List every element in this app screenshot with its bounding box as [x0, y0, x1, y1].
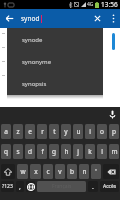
button[interactable]: Voice input	[105, 107, 120, 121]
button[interactable]: Symbols	[1, 181, 14, 192]
staticText: g	[52, 147, 56, 156]
staticText: a	[4, 127, 8, 136]
staticText: synode	[22, 36, 43, 44]
button[interactable]: u	[73, 124, 83, 139]
staticText: h	[64, 147, 69, 156]
button[interactable]: Comma	[16, 181, 24, 192]
staticText: k	[88, 147, 92, 156]
staticText: j	[77, 147, 79, 156]
button[interactable]: w	[17, 164, 28, 179]
button[interactable]: Clear search	[89, 9, 106, 28]
button[interactable]: x	[30, 164, 41, 179]
button[interactable]: z	[13, 124, 23, 139]
staticText: i	[89, 127, 91, 136]
button[interactable]: More options	[106, 9, 120, 28]
staticText: synonyme	[22, 58, 52, 66]
button[interactable]: Shift	[1, 164, 15, 179]
staticText: x	[34, 167, 38, 176]
staticText: q	[4, 147, 8, 156]
staticText: r	[41, 127, 44, 136]
button[interactable]: i	[85, 124, 95, 139]
staticText: w	[20, 167, 26, 176]
button[interactable]: Back	[0, 9, 19, 28]
staticText: b	[70, 167, 74, 176]
staticText: z	[16, 127, 20, 136]
staticText: 4G	[87, 1, 94, 8]
staticText: synod	[21, 14, 40, 23]
button[interactable]: c	[43, 164, 53, 179]
staticText: s	[16, 147, 20, 156]
button[interactable]: Backspace	[103, 164, 119, 179]
button[interactable]: o	[97, 124, 107, 139]
staticText: d	[28, 147, 32, 156]
button[interactable]: l	[97, 144, 107, 159]
staticText: ?123	[2, 183, 13, 190]
staticText: l	[101, 147, 103, 156]
staticText: ,	[19, 182, 21, 192]
button[interactable]: h	[61, 144, 71, 159]
staticText: c	[46, 167, 50, 176]
staticText: t	[53, 127, 56, 136]
button[interactable]: q	[1, 144, 11, 159]
button[interactable]: b	[67, 164, 77, 179]
button[interactable]: Period	[88, 181, 98, 192]
staticText: o	[100, 127, 104, 136]
button[interactable]: synonyme	[7, 50, 103, 72]
button[interactable]: m	[109, 144, 119, 159]
staticText: y	[64, 127, 68, 136]
staticText: m	[111, 147, 118, 156]
button[interactable]: k	[85, 144, 95, 159]
staticText: .	[92, 182, 94, 192]
button[interactable]: Enter	[100, 181, 119, 192]
button[interactable]: d	[25, 144, 35, 159]
staticText: e	[28, 127, 32, 136]
button[interactable]: Change language	[26, 181, 35, 192]
staticText: Accès	[103, 183, 117, 190]
staticText: '	[95, 167, 97, 176]
button[interactable]: s	[13, 144, 23, 159]
button[interactable]: f	[37, 144, 47, 159]
button[interactable]: r	[37, 124, 47, 139]
button[interactable]: t	[49, 124, 59, 139]
button[interactable]: synode	[7, 28, 103, 50]
button[interactable]: e	[25, 124, 35, 139]
staticText: f	[41, 147, 44, 156]
button[interactable]: g	[49, 144, 59, 159]
button[interactable]: synopsis	[7, 72, 103, 94]
button[interactable]: p	[109, 124, 119, 139]
staticText: v	[58, 167, 62, 176]
button[interactable]: v	[55, 164, 65, 179]
button[interactable]: j	[73, 144, 83, 159]
button[interactable]: y	[61, 124, 71, 139]
button[interactable]: a	[1, 124, 11, 139]
staticText: p	[112, 127, 116, 136]
button[interactable]: n	[79, 164, 89, 179]
button[interactable]: '	[91, 164, 101, 179]
staticText: synopsis	[22, 80, 47, 88]
staticText: u	[76, 127, 81, 136]
staticText: 13:56	[101, 0, 118, 9]
staticText: n	[82, 167, 87, 176]
